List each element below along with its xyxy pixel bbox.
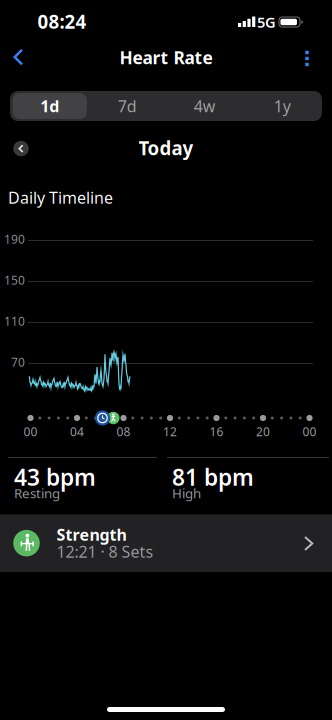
staticText: 1d [40, 95, 59, 117]
staticText: 20 [256, 423, 270, 439]
staticText: 04 [70, 423, 84, 439]
staticText: 00 [23, 423, 37, 439]
staticText: Strength [56, 524, 126, 545]
staticText: Daily Timeline [8, 187, 113, 208]
button[interactable]: 4w [166, 91, 244, 121]
staticText: 110 [4, 313, 25, 329]
staticText: High [172, 484, 201, 502]
button[interactable]: More options [293, 43, 321, 73]
button[interactable]: 7d [88, 91, 166, 121]
button[interactable]: 1y [243, 91, 321, 121]
staticText: 150 [4, 272, 25, 288]
staticText: 43 bpm [14, 462, 96, 492]
button[interactable]: Back [3, 43, 33, 72]
button[interactable]: 1d [11, 91, 89, 121]
staticText: 00 [302, 423, 316, 439]
staticText: Today [138, 136, 193, 160]
staticText: 7d [118, 95, 137, 117]
staticText: 70 [11, 354, 25, 370]
staticText: 08 [116, 423, 130, 439]
staticText: 1y [274, 95, 291, 117]
button[interactable]: Previous day [9, 137, 33, 161]
staticText: Resting [14, 484, 60, 502]
staticText: 16 [209, 423, 223, 439]
staticText: 08:24 [37, 9, 86, 34]
staticText: 5G [257, 12, 276, 32]
staticText: 81 bpm [172, 462, 254, 492]
button[interactable]: Strength [0, 514, 332, 572]
staticText: 4w [194, 95, 216, 117]
staticText: 12 [163, 423, 177, 439]
staticText: 12:21 · 8 Sets [56, 541, 153, 562]
staticText: 190 [4, 231, 25, 247]
staticText: Heart Rate [119, 46, 212, 69]
